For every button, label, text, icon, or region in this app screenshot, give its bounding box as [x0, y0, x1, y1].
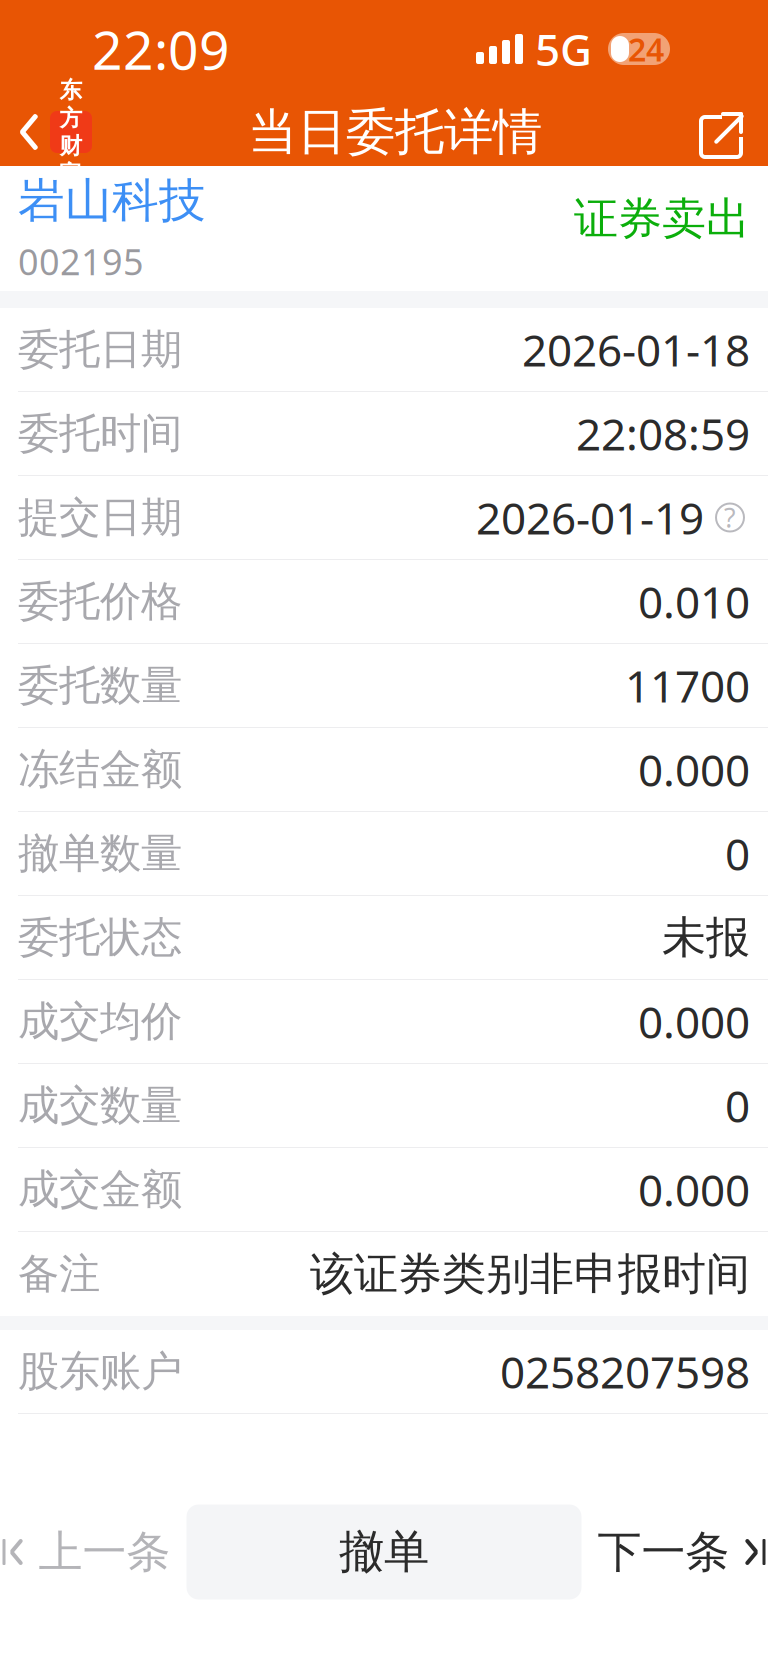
staticText: 撤单数量 [18, 828, 182, 879]
staticText: 0.000 [638, 740, 750, 799]
button[interactable]: 返回 [0, 101, 92, 163]
staticText: 5G [535, 20, 592, 78]
staticText: 当日委托详情 [248, 102, 542, 162]
staticText: 成交数量 [18, 1080, 182, 1131]
staticText: 备注 [18, 1249, 100, 1299]
staticText: 0.010 [638, 572, 750, 631]
staticText: 成交均价 [18, 996, 182, 1047]
staticText: 撤单 [339, 1524, 429, 1580]
staticText: 财富 [59, 132, 82, 188]
staticText: 证券卖出 [574, 192, 750, 246]
staticText: 委托状态 [18, 912, 182, 963]
button[interactable]: 岩山科技 [18, 172, 206, 229]
staticText: 0 [725, 1076, 750, 1135]
staticText: 11700 [625, 656, 750, 715]
staticText: 0 [725, 824, 750, 883]
staticText: 东方 [59, 76, 82, 132]
staticText: 未报 [662, 910, 750, 964]
staticText: 委托日期 [18, 324, 182, 375]
staticText: 24 [628, 28, 664, 70]
button[interactable]: 下一条 [581, 1504, 768, 1600]
button[interactable]: 上一条 [0, 1504, 186, 1600]
staticText: 成交金额 [18, 1164, 182, 1215]
staticText: 0.000 [638, 992, 750, 1051]
button[interactable]: 分享 [698, 94, 768, 170]
staticText: 22:09 [92, 14, 230, 84]
staticText: 002195 [18, 237, 144, 285]
staticText: 22:08:59 [576, 404, 750, 463]
staticText: 岩山科技 [18, 172, 206, 229]
staticText: 委托价格 [18, 576, 182, 627]
staticText: 委托数量 [18, 660, 182, 711]
staticText: 0.000 [638, 1160, 750, 1219]
staticText: 下一条 [597, 1525, 729, 1579]
staticText: 2026-01-18 [522, 320, 750, 379]
staticText: 2026-01-19 [476, 488, 704, 547]
staticText: 冻结金额 [18, 744, 182, 795]
staticText: 委托时间 [18, 408, 182, 459]
staticText: 上一条 [38, 1525, 170, 1579]
staticText: 该证券类别非申报时间 [310, 1247, 750, 1301]
staticText: 提交日期 [18, 492, 182, 543]
staticText: ? [724, 500, 736, 535]
staticText: 股东账户 [18, 1346, 182, 1397]
button[interactable]: 提交日期说明 [704, 497, 750, 537]
staticText: 0258207598 [500, 1342, 750, 1401]
button[interactable]: 撤单 [186, 1504, 581, 1599]
